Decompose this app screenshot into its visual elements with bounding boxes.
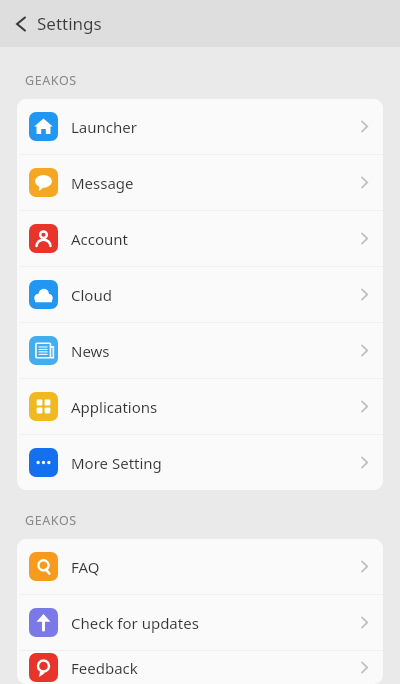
- staticText: News: [71, 341, 360, 361]
- staticText: More Setting: [71, 453, 360, 473]
- button[interactable]: Message: [17, 155, 383, 210]
- staticText: Check for updates: [71, 613, 360, 633]
- button[interactable]: Check for updates: [17, 595, 383, 650]
- staticText: GEAKOS: [25, 72, 77, 89]
- button[interactable]: Account: [17, 211, 383, 266]
- staticText: GEAKOS: [25, 512, 77, 529]
- staticText: Feedback: [71, 658, 360, 678]
- staticText: Message: [71, 173, 360, 193]
- button[interactable]: Applications: [17, 379, 383, 434]
- button[interactable]: More Setting: [17, 435, 383, 490]
- staticText: Cloud: [71, 285, 360, 305]
- button[interactable]: Launcher: [17, 99, 383, 154]
- button[interactable]: Cloud: [17, 267, 383, 322]
- staticText: Settings: [37, 12, 102, 35]
- staticText: Applications: [71, 397, 360, 417]
- other: Back: [14, 15, 28, 33]
- staticText: Account: [71, 229, 360, 249]
- staticText: Launcher: [71, 117, 360, 137]
- button[interactable]: Back: [0, 6, 116, 41]
- staticText: FAQ: [71, 557, 360, 577]
- button[interactable]: Feedback: [17, 651, 383, 684]
- button[interactable]: News: [17, 323, 383, 378]
- button[interactable]: FAQ: [17, 539, 383, 594]
